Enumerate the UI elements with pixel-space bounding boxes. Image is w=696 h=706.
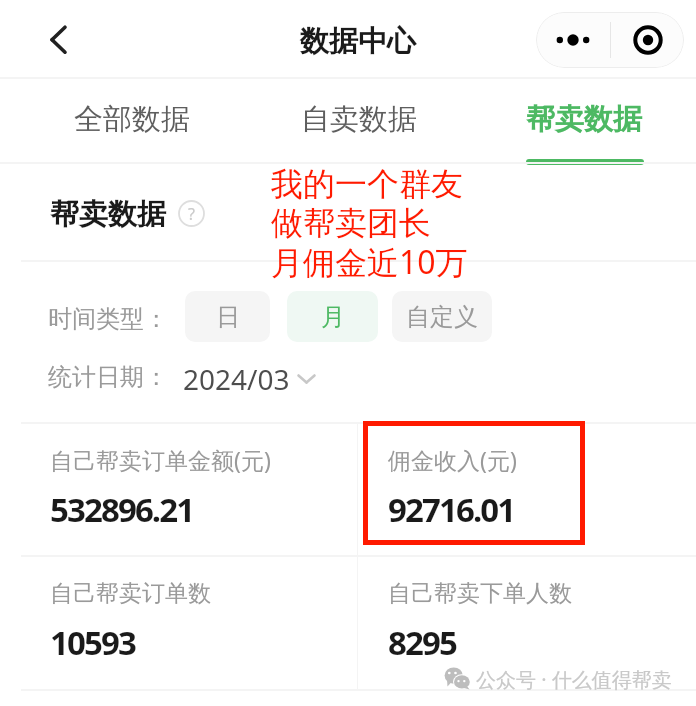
staticText: ? <box>188 203 195 225</box>
staticText: 公众号 · 什么值得帮卖 <box>476 666 672 693</box>
button[interactable]: 全部数据 <box>74 101 190 138</box>
staticText: 我的一个群友 做帮卖团长 月佣金近10万 <box>271 164 468 284</box>
button[interactable]: 自卖数据 <box>301 101 417 138</box>
staticText: 佣金收入(元) <box>388 444 517 475</box>
button[interactable]: Help <box>178 200 205 227</box>
staticText: 532896.21 <box>50 487 194 532</box>
staticText: 92716.01 <box>388 487 515 532</box>
staticText: 时间类型： <box>48 304 168 334</box>
staticText: 自己帮卖下单人数 <box>388 579 572 608</box>
staticText: 8295 <box>388 620 456 665</box>
staticText: 日 <box>216 302 240 332</box>
button[interactable]: Back <box>30 12 86 68</box>
staticText: 月 <box>321 302 345 332</box>
staticText: 统计日期： <box>48 362 168 392</box>
button[interactable]: More <box>536 12 610 68</box>
button[interactable]: 自定义 <box>392 291 492 342</box>
staticText: 自己帮卖订单数 <box>50 579 211 608</box>
button[interactable]: 帮卖数据 <box>526 101 642 138</box>
staticText: 2024/03 <box>183 360 290 398</box>
button[interactable]: 日 <box>185 291 270 342</box>
staticText: 数据中心 <box>300 23 416 60</box>
staticText: 自定义 <box>406 302 478 332</box>
button[interactable]: Close <box>611 12 684 68</box>
button[interactable]: 2024/03 <box>183 360 316 398</box>
button[interactable]: 月 <box>287 291 378 342</box>
staticText: 10593 <box>50 620 135 665</box>
staticText: 帮卖数据 <box>50 196 166 233</box>
staticText: 自己帮卖订单金额(元) <box>50 444 271 475</box>
